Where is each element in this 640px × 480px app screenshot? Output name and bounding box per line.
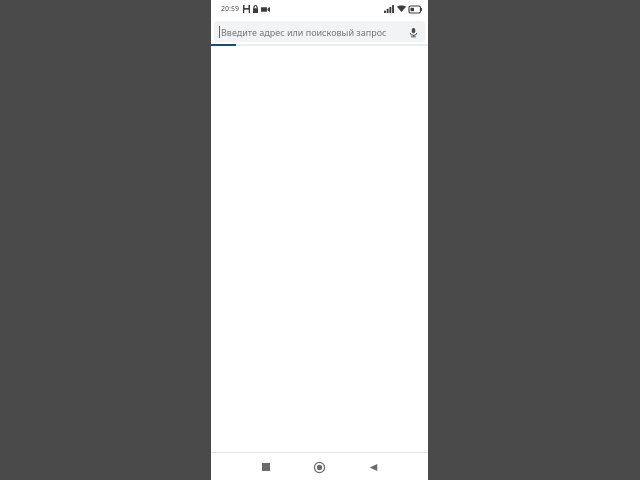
button[interactable]: Voice search <box>404 23 422 41</box>
button[interactable]: Введите адрес или поисковый запрос <box>214 21 425 42</box>
button[interactable]: Back <box>360 454 386 480</box>
button[interactable]: Recent apps <box>253 454 279 480</box>
staticText: 20:59 <box>221 4 239 14</box>
button[interactable]: Home <box>306 454 332 480</box>
staticText: Введите адрес или поисковый запрос <box>221 26 401 38</box>
